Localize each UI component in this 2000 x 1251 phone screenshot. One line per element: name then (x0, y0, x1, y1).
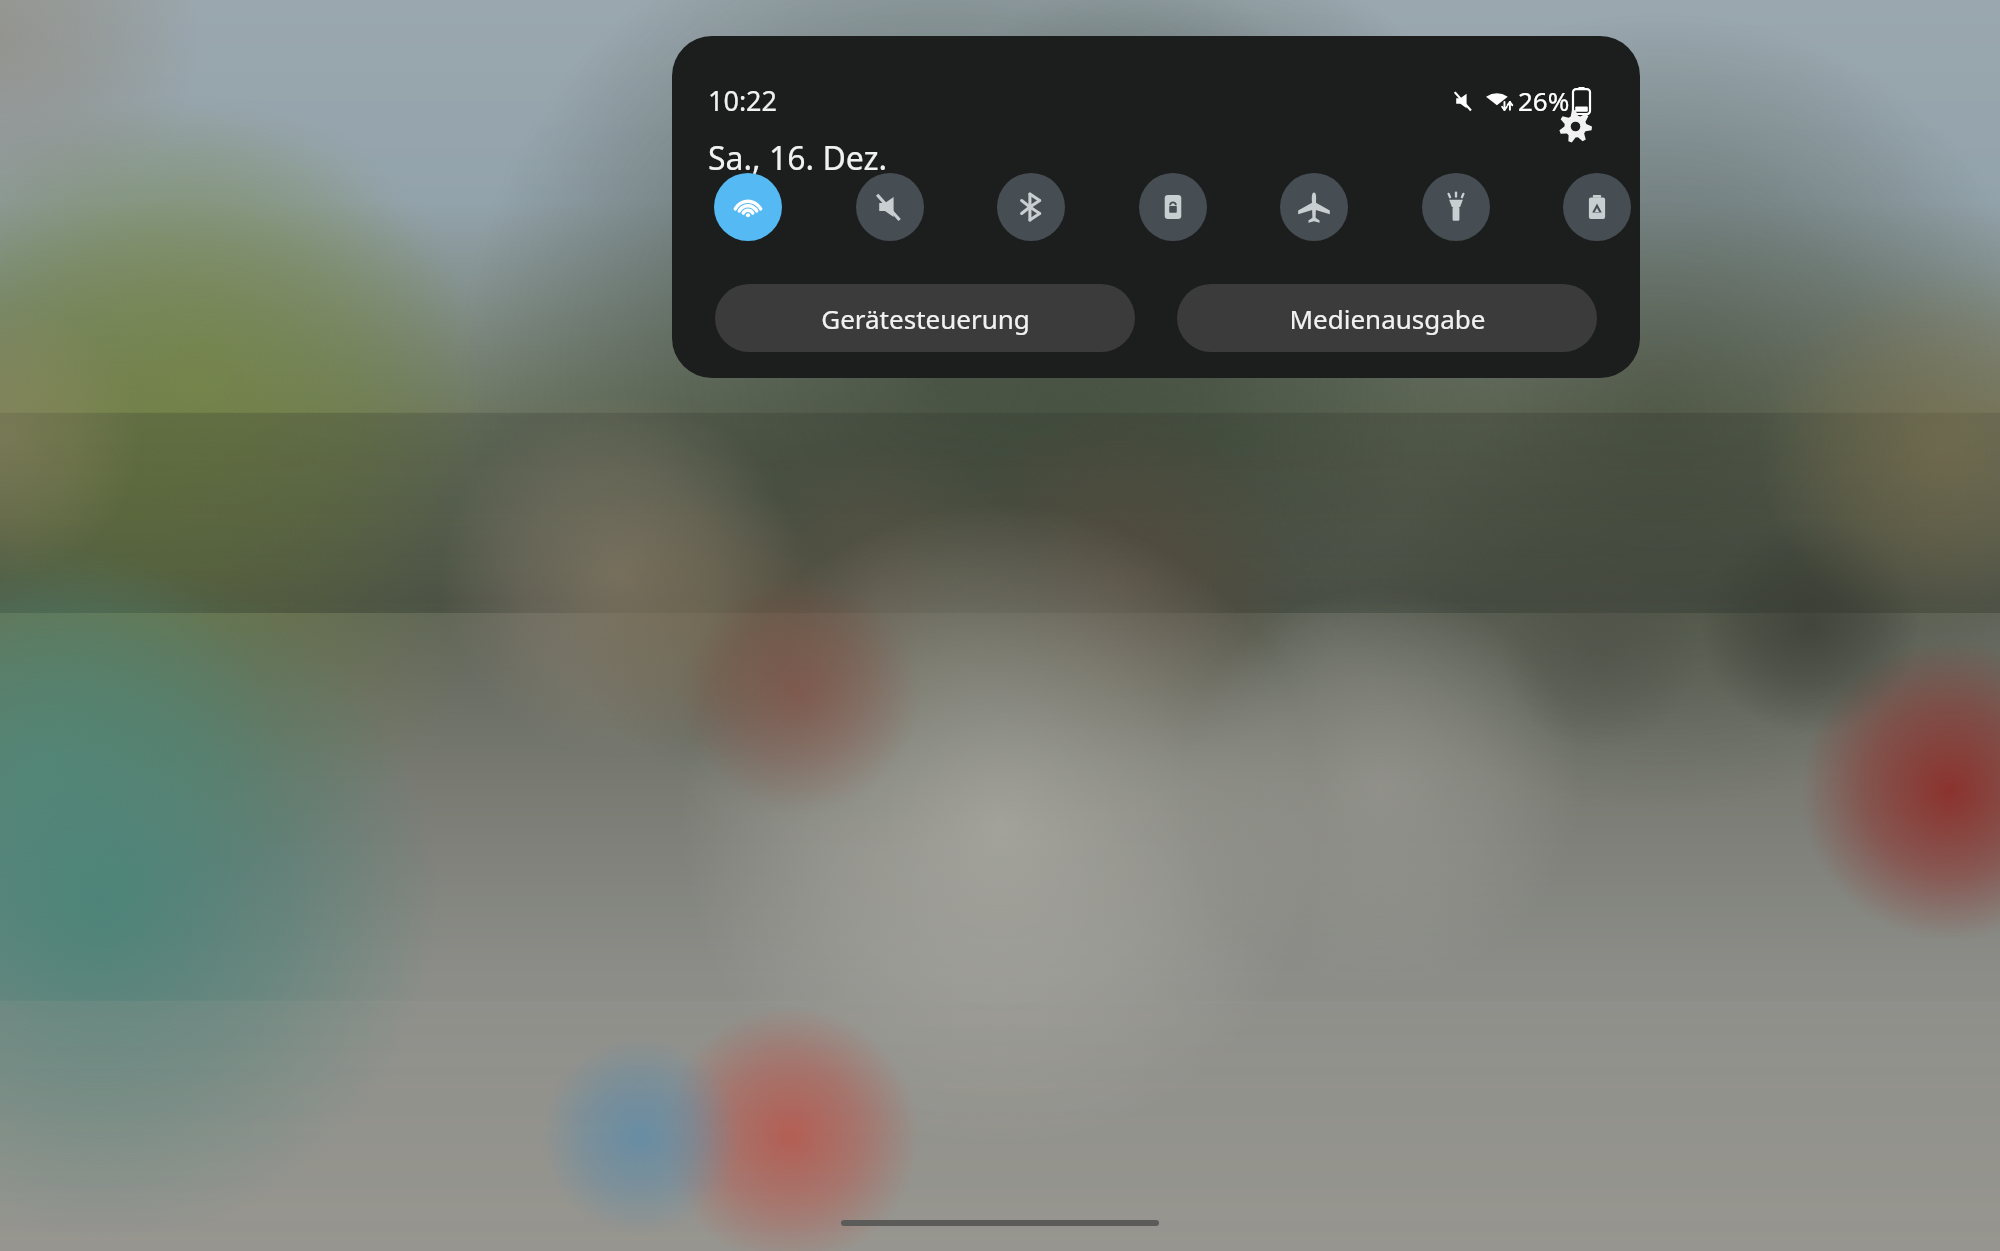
button[interactable]: Medienausgabe (1177, 284, 1597, 352)
button[interactable]: Stumm (856, 173, 924, 241)
button[interactable]: Automatisch drehen (1139, 173, 1207, 241)
button[interactable]: Gerätesteuerung (715, 284, 1135, 352)
button[interactable]: Flugmodus (1280, 173, 1348, 241)
staticText: 10:22 (708, 82, 778, 119)
button[interactable]: Einstellungen (1547, 98, 1603, 154)
staticText: Medienausgabe (1289, 301, 1486, 336)
button[interactable]: Bluetooth (997, 173, 1065, 241)
staticText: Sa., 16. Dez. (708, 136, 888, 180)
button[interactable]: Taschenlampe (1422, 173, 1490, 241)
staticText: 26% (1518, 83, 1570, 118)
staticText: Gerätesteuerung (821, 301, 1030, 336)
button[interactable]: Energiesparmodus (1563, 173, 1631, 241)
button[interactable]: WLAN (714, 173, 782, 241)
